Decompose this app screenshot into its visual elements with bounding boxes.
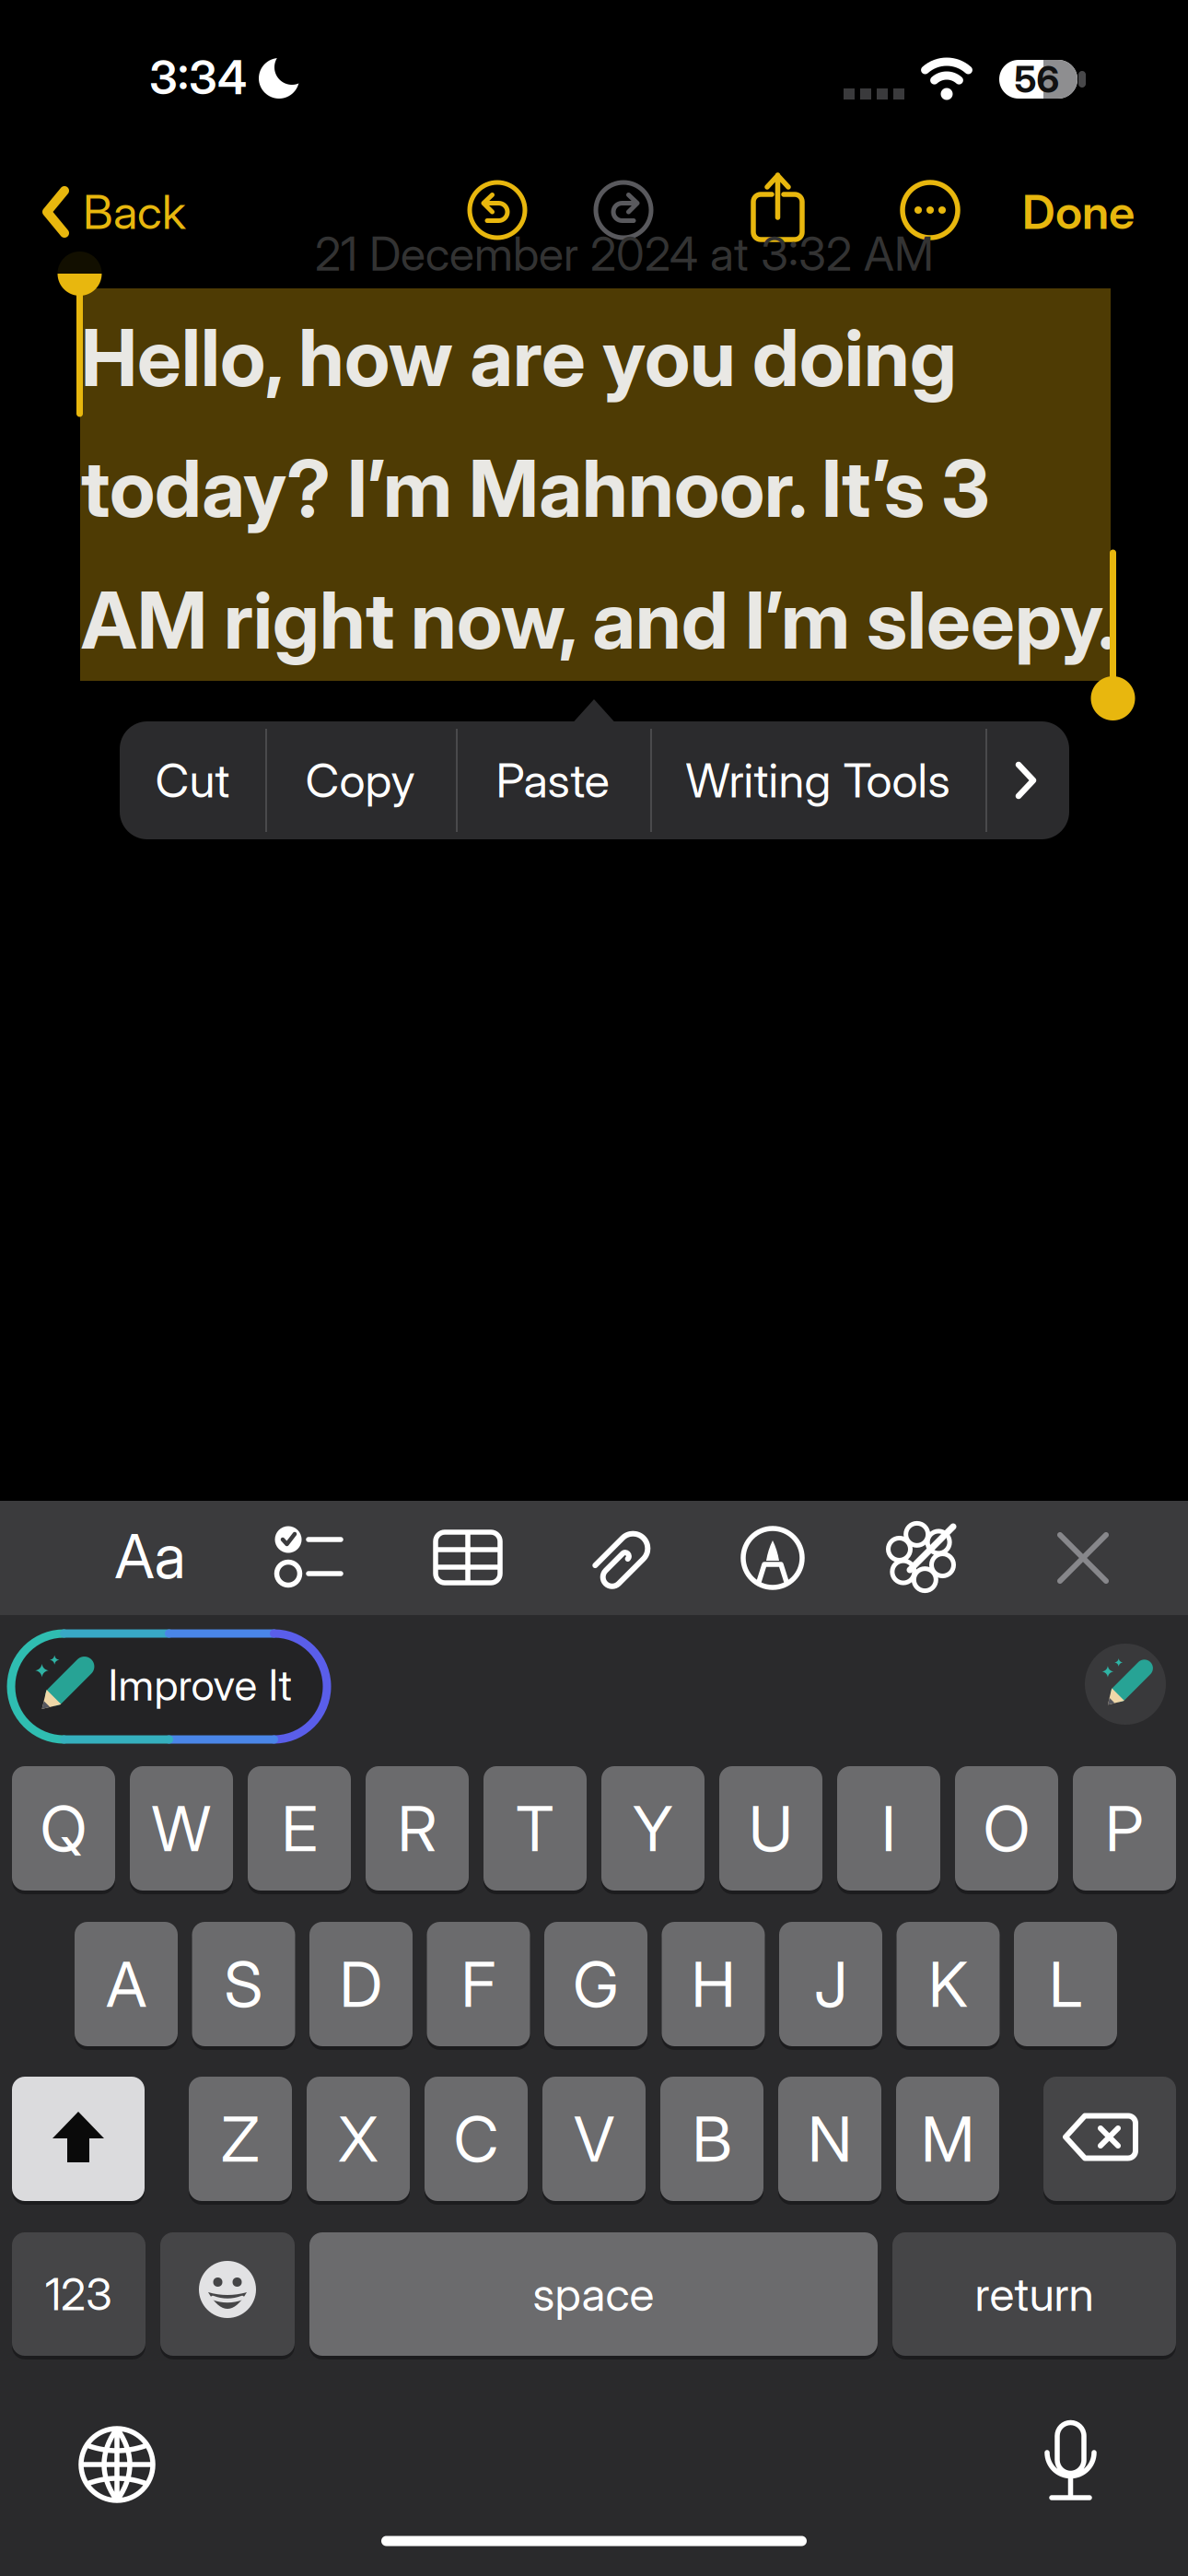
- button[interactable]: Writing Tools: [654, 725, 982, 836]
- button[interactable]: Cut: [123, 725, 262, 836]
- button[interactable]: Writing Tools: [884, 1518, 961, 1596]
- staticText: S: [224, 1947, 263, 2021]
- button[interactable]: E: [248, 1764, 351, 1892]
- button[interactable]: M: [896, 2075, 999, 2203]
- button[interactable]: T: [483, 1764, 587, 1892]
- button[interactable]: Next keyboard: [78, 2426, 156, 2503]
- staticText: space: [533, 2267, 654, 2321]
- button[interactable]: K: [897, 1920, 1000, 2048]
- staticText: P: [1105, 1791, 1144, 1865]
- button[interactable]: Delete: [1043, 2075, 1176, 2203]
- button[interactable]: Improve It: [1085, 1644, 1166, 1725]
- button[interactable]: A: [75, 1920, 178, 2048]
- staticText: Cut: [155, 753, 230, 808]
- button[interactable]: D: [309, 1920, 413, 2048]
- button[interactable]: I: [837, 1764, 940, 1892]
- button[interactable]: P: [1073, 1764, 1176, 1892]
- staticText: L: [1049, 1947, 1082, 2021]
- staticText: Done: [1022, 184, 1135, 240]
- button[interactable]: Markup: [740, 1526, 805, 1590]
- button[interactable]: N: [778, 2075, 881, 2203]
- staticText: today? I’m Mahnoor. It’s 3: [81, 442, 990, 535]
- button[interactable]: B: [660, 2075, 763, 2203]
- button[interactable]: Shift: [12, 2075, 145, 2203]
- staticText: B: [692, 2102, 732, 2176]
- button[interactable]: F: [427, 1920, 530, 2048]
- button[interactable]: Share: [750, 165, 806, 250]
- staticText: C: [454, 2102, 499, 2176]
- staticText: R: [397, 1791, 437, 1865]
- button[interactable]: Emoji: [160, 2231, 295, 2358]
- staticText: 21 December 2024 at 3:32 AM: [315, 227, 934, 281]
- button[interactable]: U: [719, 1764, 822, 1892]
- staticText: Copy: [305, 753, 415, 808]
- staticText: A: [106, 1947, 146, 2021]
- button[interactable]: Dismiss keyboard toolbar: [1057, 1532, 1109, 1584]
- button[interactable]: H: [662, 1920, 765, 2048]
- button[interactable]: Done: [1022, 184, 1135, 240]
- staticText: N: [808, 2102, 852, 2176]
- staticText: Q: [40, 1791, 87, 1865]
- button[interactable]: space: [309, 2231, 878, 2358]
- button[interactable]: J: [779, 1920, 882, 2048]
- staticText: V: [574, 2102, 614, 2176]
- staticText: W: [151, 1791, 211, 1865]
- staticText: T: [516, 1791, 554, 1865]
- button[interactable]: X: [307, 2075, 410, 2203]
- button[interactable]: Dictate: [1031, 2414, 1111, 2502]
- staticText: K: [928, 1947, 968, 2021]
- staticText: I: [881, 1791, 896, 1865]
- staticText: Writing Tools: [686, 753, 950, 808]
- button[interactable]: Back: [42, 184, 186, 240]
- button[interactable]: Checklist: [274, 1524, 347, 1590]
- staticText: 3:34: [149, 50, 247, 105]
- staticText: G: [573, 1947, 619, 2021]
- button[interactable]: More actions: [1009, 757, 1042, 803]
- button[interactable]: Copy: [273, 725, 448, 836]
- staticText: return: [975, 2267, 1094, 2321]
- button[interactable]: Undo: [465, 178, 530, 242]
- button[interactable]: Aa: [95, 1505, 205, 1607]
- staticText: 123: [45, 2268, 112, 2320]
- button[interactable]: Z: [189, 2075, 292, 2203]
- staticText: AM right now, and I’m sleepy.: [81, 574, 1117, 666]
- staticText: Aa: [115, 1520, 186, 1592]
- staticText: F: [461, 1947, 496, 2021]
- button[interactable]: Table: [434, 1530, 502, 1585]
- staticText: H: [691, 1947, 735, 2021]
- button[interactable]: Redo: [591, 178, 656, 242]
- staticText: Hello, how are you doing: [81, 311, 957, 404]
- button[interactable]: Y: [601, 1764, 705, 1892]
- staticText: D: [339, 1947, 383, 2021]
- staticText: O: [983, 1791, 1030, 1865]
- staticText: Improve It: [108, 1660, 291, 1710]
- button[interactable]: More: [898, 178, 962, 242]
- button[interactable]: Q: [12, 1764, 115, 1892]
- button[interactable]: 123: [12, 2231, 146, 2358]
- staticText: Z: [221, 2102, 260, 2176]
- staticText: X: [338, 2102, 379, 2176]
- button[interactable]: Attach: [582, 1518, 663, 1599]
- button[interactable]: O: [955, 1764, 1058, 1892]
- button[interactable]: G: [544, 1920, 647, 2048]
- staticText: E: [281, 1791, 317, 1865]
- button[interactable]: R: [366, 1764, 469, 1892]
- staticText: 56: [1014, 57, 1060, 101]
- button[interactable]: return: [892, 2231, 1176, 2358]
- button[interactable]: C: [425, 2075, 528, 2203]
- button[interactable]: W: [130, 1764, 233, 1892]
- staticText: Back: [83, 184, 186, 240]
- button[interactable]: Paste: [463, 725, 642, 836]
- button[interactable]: S: [192, 1920, 295, 2048]
- staticText: Y: [633, 1791, 673, 1865]
- button[interactable]: Improve It: [11, 1633, 327, 1739]
- staticText: Paste: [496, 753, 609, 808]
- staticText: J: [814, 1947, 847, 2021]
- staticText: U: [749, 1791, 793, 1865]
- button[interactable]: V: [542, 2075, 646, 2203]
- button[interactable]: L: [1014, 1920, 1117, 2048]
- staticText: M: [921, 2102, 974, 2176]
